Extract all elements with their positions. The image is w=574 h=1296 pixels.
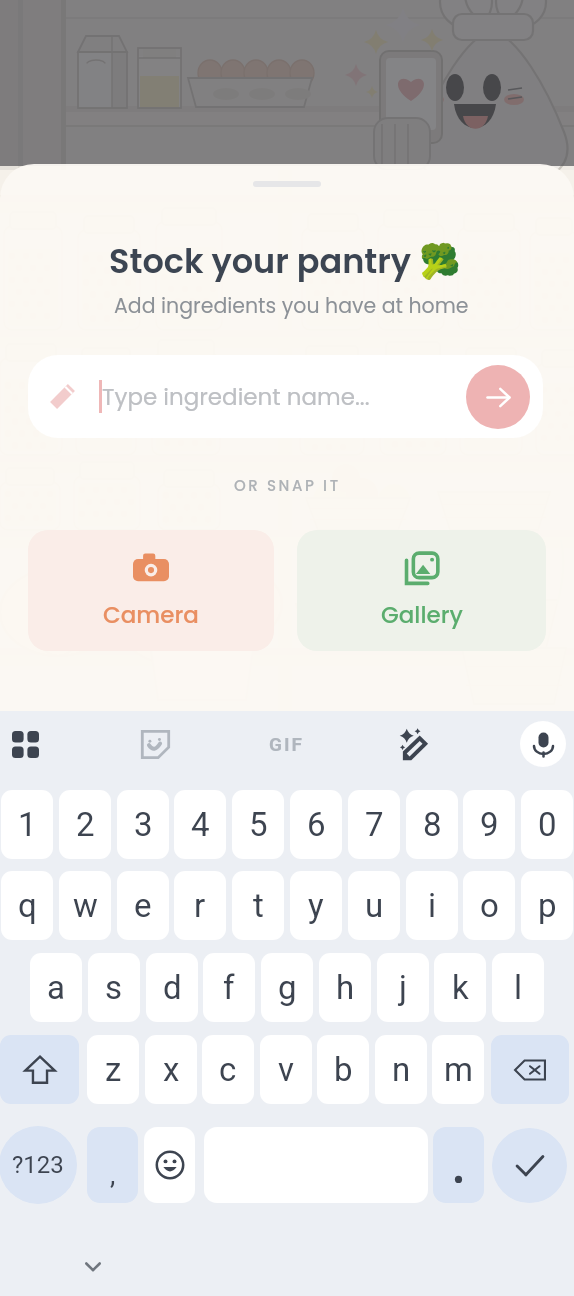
staticText: 4 xyxy=(191,805,210,844)
button[interactable]: GIF xyxy=(258,729,314,759)
staticText: Stock your pantry 🥦 xyxy=(109,238,461,285)
button[interactable]: d xyxy=(146,953,198,1022)
button[interactable]: Keyboard modes xyxy=(12,731,39,758)
staticText: 8 xyxy=(423,805,442,844)
button[interactable]: q xyxy=(1,871,53,940)
staticText: 3 xyxy=(134,805,153,844)
button[interactable]: 9 xyxy=(463,790,515,859)
button[interactable]: t xyxy=(232,871,284,940)
staticText: j xyxy=(399,968,407,1007)
button[interactable]: m xyxy=(432,1035,484,1104)
button[interactable]: Voice input xyxy=(520,721,566,767)
button[interactable]: 6 xyxy=(290,790,342,859)
staticText: b xyxy=(334,1050,353,1089)
staticText: 7 xyxy=(365,805,384,844)
staticText: m xyxy=(444,1050,473,1089)
button[interactable]: g xyxy=(261,953,313,1022)
staticText: OR SNAP IT xyxy=(234,475,341,496)
button[interactable]: w xyxy=(59,871,111,940)
button[interactable]: b xyxy=(317,1035,369,1104)
staticText: z xyxy=(105,1050,122,1089)
button[interactable]: , xyxy=(87,1127,138,1203)
button[interactable]: Add ingredient xyxy=(466,365,530,429)
staticText: , xyxy=(110,1159,116,1191)
staticText: x xyxy=(163,1050,180,1089)
staticText: k xyxy=(452,968,469,1007)
button[interactable]: 8 xyxy=(406,790,458,859)
staticText: v xyxy=(278,1050,294,1089)
button[interactable]: p xyxy=(521,871,573,940)
staticText: GIF xyxy=(269,733,304,755)
button[interactable]: 4 xyxy=(174,790,226,859)
button[interactable]: n xyxy=(375,1035,427,1104)
button[interactable]: a xyxy=(30,953,82,1022)
staticText: r xyxy=(194,886,206,925)
button[interactable]: f xyxy=(203,953,255,1022)
staticText: Camera xyxy=(103,599,199,631)
button[interactable]: ?123 xyxy=(0,1126,77,1204)
button[interactable]: r xyxy=(174,871,226,940)
button[interactable]: i xyxy=(406,871,458,940)
staticText: 2 xyxy=(76,805,95,844)
staticText: l xyxy=(514,968,523,1007)
button[interactable]: k xyxy=(434,953,486,1022)
staticText: e xyxy=(134,886,152,925)
staticText: 5 xyxy=(249,805,268,844)
button[interactable]: o xyxy=(463,871,515,940)
staticText: s xyxy=(105,968,123,1007)
staticText: q xyxy=(18,886,37,925)
staticText: p xyxy=(538,886,557,925)
button[interactable]: l xyxy=(492,953,544,1022)
staticText: Type ingredient name... xyxy=(102,381,370,413)
button[interactable]: x xyxy=(145,1035,197,1104)
button[interactable]: Gallery xyxy=(297,530,546,651)
button[interactable]: Camera xyxy=(28,530,274,651)
button[interactable]: y xyxy=(290,871,342,940)
staticText: Add ingredients you have at home xyxy=(114,291,469,320)
button[interactable]: Emoji xyxy=(144,1127,195,1203)
staticText: d xyxy=(163,968,182,1007)
staticText: u xyxy=(365,886,384,925)
button[interactable]: 0 xyxy=(521,790,573,859)
button[interactable]: c xyxy=(202,1035,254,1104)
staticText: 1 xyxy=(18,805,37,844)
staticText: ?123 xyxy=(12,1151,64,1179)
button[interactable]: 7 xyxy=(348,790,400,859)
button[interactable]: j xyxy=(377,953,429,1022)
staticText: h xyxy=(336,968,355,1007)
button[interactable]: 3 xyxy=(117,790,169,859)
staticText: i xyxy=(428,886,437,925)
button[interactable]: z xyxy=(87,1035,139,1104)
staticText: 6 xyxy=(307,805,326,844)
staticText: y xyxy=(308,886,324,925)
button[interactable]: 2 xyxy=(59,790,111,859)
staticText: c xyxy=(219,1050,237,1089)
button[interactable]: Shift xyxy=(0,1035,79,1104)
button[interactable]: Stickers xyxy=(139,728,172,761)
staticText: n xyxy=(392,1050,411,1089)
staticText: t xyxy=(253,886,264,925)
staticText: o xyxy=(480,886,499,925)
staticText: 9 xyxy=(480,805,499,844)
button[interactable]: Backspace xyxy=(491,1035,569,1104)
button[interactable]: u xyxy=(348,871,400,940)
button[interactable]: Magic compose xyxy=(398,727,433,762)
button[interactable]: h xyxy=(319,953,371,1022)
staticText: f xyxy=(223,968,235,1007)
button[interactable]: Type ingredient name... xyxy=(28,355,543,438)
staticText: 0 xyxy=(538,805,557,844)
button[interactable]: 1 xyxy=(1,790,53,859)
staticText: Gallery xyxy=(381,599,463,631)
button[interactable] xyxy=(433,1127,484,1203)
staticText: a xyxy=(47,968,65,1007)
button[interactable]: e xyxy=(117,871,169,940)
button[interactable]: s xyxy=(88,953,140,1022)
button[interactable]: v xyxy=(260,1035,312,1104)
button[interactable]: 5 xyxy=(232,790,284,859)
button[interactable]: Hide keyboard xyxy=(77,1251,109,1283)
staticText: w xyxy=(73,886,98,925)
staticText: g xyxy=(278,968,297,1007)
button[interactable]: Enter xyxy=(492,1128,567,1203)
